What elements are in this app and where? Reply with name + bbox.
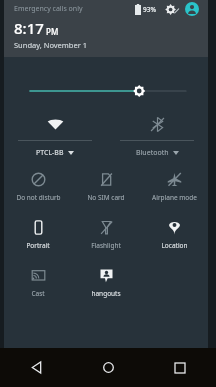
staticText: PM xyxy=(46,26,59,37)
staticText: Location xyxy=(161,241,188,250)
staticText: No SIM card xyxy=(87,193,125,202)
button[interactable]: Recents xyxy=(144,348,216,387)
button[interactable]: PTCL-BB xyxy=(4,116,106,158)
button[interactable]: Settings xyxy=(163,1,179,17)
staticText: Emergency calls only xyxy=(14,4,83,14)
staticText: hangouts xyxy=(91,289,121,298)
button[interactable]: Flashlight xyxy=(72,218,140,252)
staticText: Cast xyxy=(31,289,45,298)
staticText: Airplane mode xyxy=(152,193,197,202)
staticText: 8:17 xyxy=(14,18,44,38)
button[interactable]: No SIM card xyxy=(72,170,140,204)
button[interactable]: Home xyxy=(72,348,144,387)
button[interactable]: User account xyxy=(184,1,200,17)
button[interactable]: hangouts xyxy=(72,266,140,300)
staticText: Sunday, November 1 xyxy=(14,40,88,50)
staticText: Bluetooth xyxy=(136,148,169,158)
staticText: Flashlight xyxy=(91,241,121,250)
button[interactable]: Bluetooth xyxy=(106,116,208,158)
staticText: 93% xyxy=(143,5,156,14)
button[interactable]: Cast xyxy=(4,266,72,300)
button[interactable]: Do not disturb xyxy=(4,170,72,204)
staticText: Do not disturb xyxy=(16,193,61,202)
button[interactable]: Location xyxy=(140,218,208,252)
staticText: PTCL-BB xyxy=(36,148,64,158)
button[interactable]: Brightness xyxy=(4,83,208,99)
button[interactable]: Portrait xyxy=(4,218,72,252)
button[interactable]: Back xyxy=(0,348,72,387)
button[interactable]: Airplane mode xyxy=(140,170,208,204)
staticText: Portrait xyxy=(26,241,50,250)
